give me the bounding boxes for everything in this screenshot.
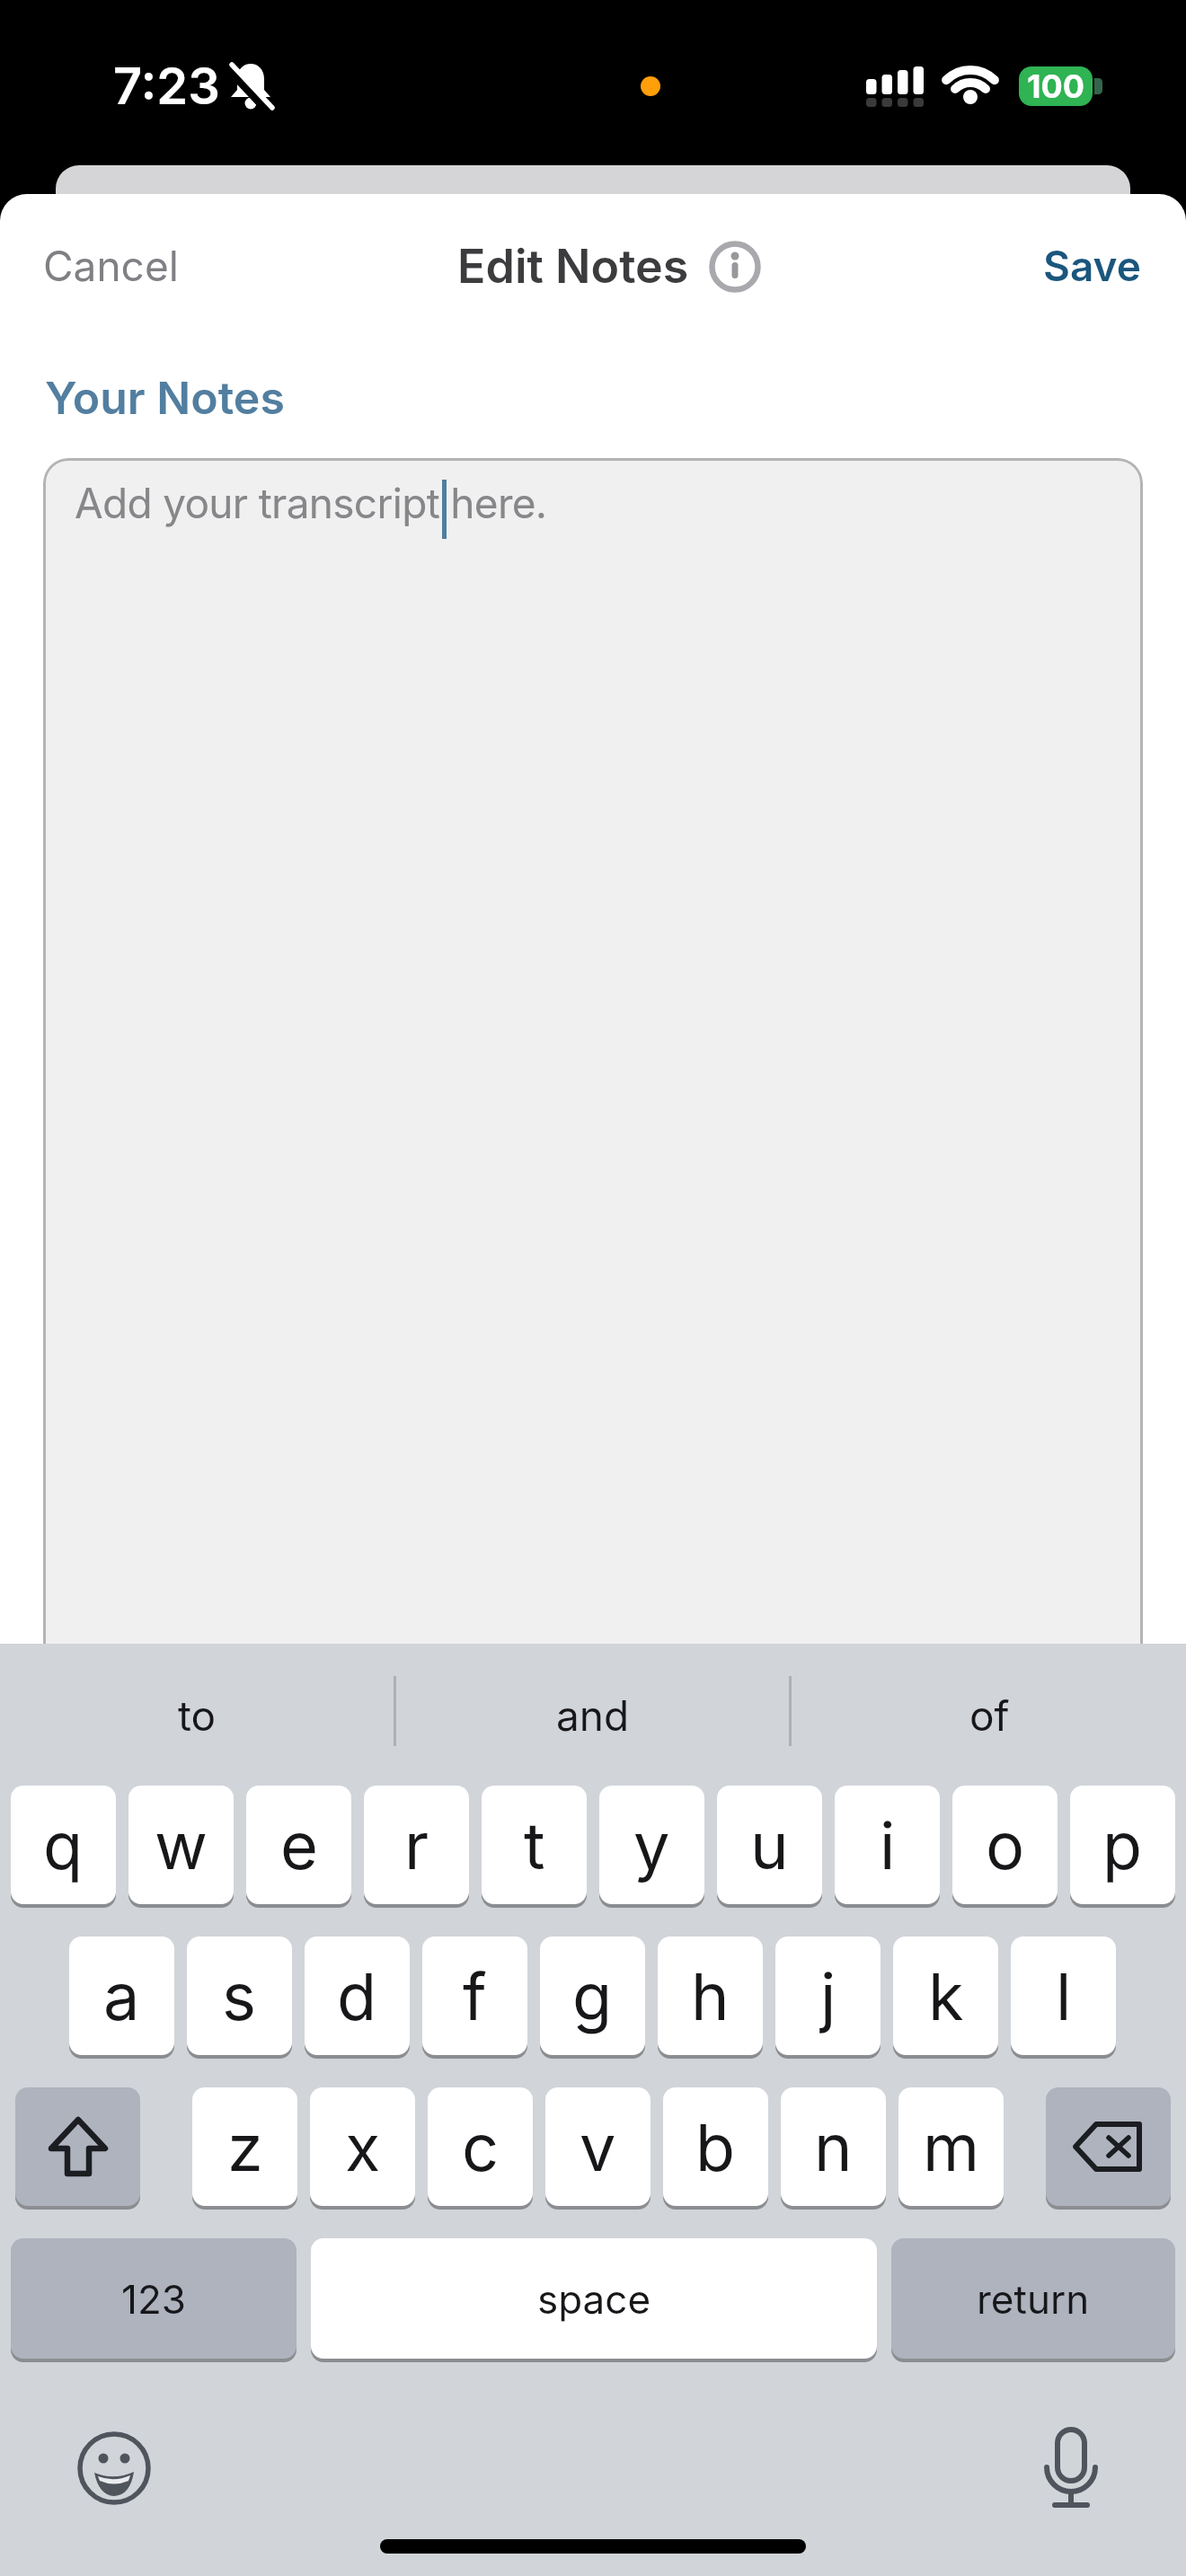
button[interactable]: w bbox=[128, 1786, 234, 1904]
staticText: 7:23 bbox=[113, 56, 220, 117]
staticText: 123 bbox=[121, 2275, 186, 2323]
staticText: to bbox=[178, 1690, 217, 1741]
button[interactable]: l bbox=[1011, 1936, 1116, 2055]
staticText: b bbox=[695, 2108, 736, 2186]
button[interactable]: b bbox=[663, 2087, 768, 2206]
staticText: z bbox=[227, 2108, 263, 2186]
button[interactable]: g bbox=[540, 1936, 645, 2055]
staticText: i bbox=[880, 1806, 896, 1884]
button[interactable]: h bbox=[658, 1936, 763, 2055]
staticText: s bbox=[222, 1957, 257, 2035]
staticText: r bbox=[404, 1806, 429, 1884]
staticText: j bbox=[820, 1957, 836, 2035]
button[interactable]: space bbox=[311, 2238, 877, 2359]
button[interactable] bbox=[709, 241, 761, 293]
staticText: Your Notes bbox=[45, 371, 285, 425]
button[interactable]: q bbox=[11, 1786, 116, 1904]
button[interactable]: m bbox=[898, 2087, 1004, 2206]
staticText: d bbox=[337, 1957, 377, 2035]
staticText: Edit Notes bbox=[457, 238, 689, 295]
button[interactable]: n bbox=[781, 2087, 886, 2206]
staticText: k bbox=[928, 1957, 964, 2035]
staticText: l bbox=[1056, 1957, 1072, 2035]
button[interactable]: o bbox=[952, 1786, 1058, 1904]
button[interactable]: y bbox=[599, 1786, 704, 1904]
staticText: x bbox=[345, 2108, 381, 2186]
staticText: q bbox=[43, 1806, 84, 1884]
staticText: v bbox=[580, 2108, 616, 2186]
staticText: return bbox=[977, 2275, 1090, 2323]
button[interactable]: i bbox=[835, 1786, 940, 1904]
staticText: h bbox=[691, 1957, 730, 2035]
button[interactable]: to bbox=[0, 1653, 394, 1778]
button[interactable]: u bbox=[717, 1786, 822, 1904]
button[interactable]: d bbox=[305, 1936, 410, 2055]
staticText: Cancel bbox=[43, 241, 179, 291]
button[interactable]: of bbox=[792, 1653, 1186, 1778]
staticText: u bbox=[750, 1806, 789, 1884]
button[interactable]: Save bbox=[1043, 241, 1141, 291]
button[interactable]: j bbox=[775, 1936, 881, 2055]
staticText: Save bbox=[1043, 241, 1141, 291]
staticText: m bbox=[923, 2108, 980, 2186]
button[interactable]: 123 bbox=[11, 2238, 296, 2359]
staticText: Add your transcript here. bbox=[75, 478, 547, 528]
staticText: e bbox=[280, 1806, 318, 1884]
button[interactable]: c bbox=[428, 2087, 533, 2206]
staticText: w bbox=[155, 1806, 208, 1884]
staticText: and bbox=[556, 1690, 630, 1741]
staticText: f bbox=[463, 1957, 487, 2035]
button[interactable] bbox=[76, 2430, 152, 2506]
button[interactable]: s bbox=[187, 1936, 292, 2055]
button[interactable]: and bbox=[396, 1653, 790, 1778]
button[interactable]: return bbox=[891, 2238, 1175, 2359]
button[interactable]: a bbox=[69, 1936, 174, 2055]
button[interactable]: x bbox=[310, 2087, 415, 2206]
staticText: y bbox=[633, 1806, 670, 1884]
button[interactable]: Cancel bbox=[43, 235, 179, 296]
staticText: 100 bbox=[1027, 66, 1085, 106]
staticText: of bbox=[969, 1690, 1010, 1741]
button[interactable]: Add your transcript here. bbox=[43, 458, 1143, 1734]
staticText: g bbox=[572, 1957, 613, 2035]
staticText: t bbox=[524, 1806, 545, 1884]
button[interactable]: e bbox=[246, 1786, 351, 1904]
staticText: c bbox=[462, 2108, 500, 2186]
button[interactable]: f bbox=[422, 1936, 527, 2055]
button[interactable]: t bbox=[482, 1786, 587, 1904]
button[interactable] bbox=[1046, 2087, 1171, 2206]
button[interactable]: z bbox=[192, 2087, 297, 2206]
button[interactable]: v bbox=[545, 2087, 651, 2206]
button[interactable] bbox=[15, 2087, 140, 2206]
staticText: p bbox=[1102, 1806, 1143, 1884]
staticText: space bbox=[537, 2275, 651, 2323]
button[interactable] bbox=[1035, 2425, 1107, 2515]
button[interactable]: r bbox=[364, 1786, 469, 1904]
button[interactable]: p bbox=[1070, 1786, 1175, 1904]
button[interactable]: k bbox=[893, 1936, 998, 2055]
staticText: n bbox=[814, 2108, 853, 2186]
staticText: o bbox=[986, 1806, 1025, 1884]
staticText: a bbox=[103, 1957, 140, 2035]
